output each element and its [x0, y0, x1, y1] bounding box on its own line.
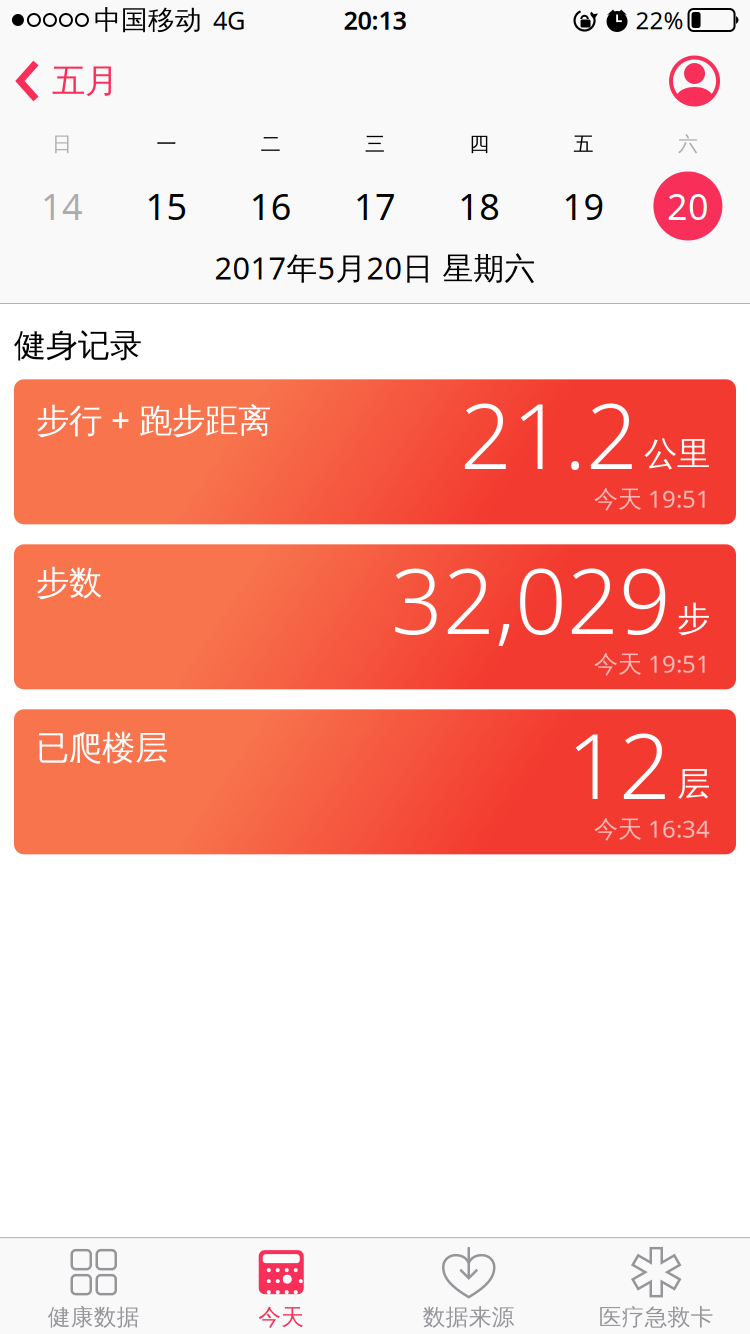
button[interactable]: 14: [10, 182, 114, 230]
staticText: 15: [145, 182, 187, 230]
staticText: 20: [667, 182, 709, 230]
staticText: 今天: [258, 1303, 304, 1331]
staticText: 二: [261, 132, 281, 156]
button[interactable]: 16: [219, 182, 323, 230]
staticText: 22%: [635, 4, 683, 36]
staticText: 步数: [36, 562, 102, 603]
staticText: 今天 19:51: [594, 482, 710, 514]
staticText: 已爬楼层: [36, 727, 168, 768]
button[interactable]: 个人信息: [669, 55, 750, 106]
button[interactable]: 17: [323, 182, 427, 230]
staticText: 步: [677, 598, 710, 639]
staticText: 21.2: [460, 374, 638, 494]
staticText: 健身记录: [14, 326, 142, 365]
staticText: 19: [563, 182, 605, 230]
staticText: 14: [41, 182, 83, 230]
button[interactable]: 数据来源: [375, 1246, 562, 1331]
staticText: 20:13: [343, 3, 406, 37]
staticText: 今天 19:51: [594, 647, 710, 679]
button[interactable]: 医疗急救卡: [562, 1246, 750, 1331]
staticText: 医疗急救卡: [599, 1303, 714, 1331]
staticText: 三: [365, 132, 385, 156]
staticText: 32,029: [391, 539, 671, 659]
button[interactable]: 20: [636, 171, 740, 240]
button[interactable]: 18: [427, 182, 531, 230]
staticText: 四: [469, 132, 489, 156]
button[interactable]: 五月: [0, 59, 118, 102]
staticText: 数据来源: [423, 1303, 515, 1331]
staticText: 六: [678, 132, 698, 156]
staticText: 步行 + 跑步距离: [36, 397, 271, 442]
button[interactable]: 健康数据: [0, 1246, 187, 1331]
button[interactable]: 已爬楼层: [14, 709, 736, 854]
staticText: 中国移动: [94, 4, 202, 36]
staticText: 五月: [52, 60, 118, 101]
button[interactable]: 步行 + 跑步距离: [14, 379, 736, 524]
staticText: 公里: [644, 433, 710, 474]
button[interactable]: 15: [114, 182, 219, 230]
button[interactable]: 今天: [187, 1246, 375, 1331]
button[interactable]: 19: [531, 182, 636, 230]
button[interactable]: 步数: [14, 544, 736, 689]
staticText: 17: [354, 182, 396, 230]
staticText: 18: [458, 182, 500, 230]
staticText: 健康数据: [48, 1303, 140, 1331]
staticText: 16: [250, 182, 292, 230]
staticText: 层: [677, 763, 710, 804]
staticText: 12: [567, 704, 671, 824]
staticText: 今天 16:34: [594, 812, 710, 844]
staticText: 日: [52, 132, 72, 156]
staticText: 五: [574, 132, 594, 156]
staticText: 4G: [213, 3, 245, 37]
staticText: 一: [156, 132, 176, 156]
staticText: 2017年5月20日 星期六: [214, 247, 535, 288]
